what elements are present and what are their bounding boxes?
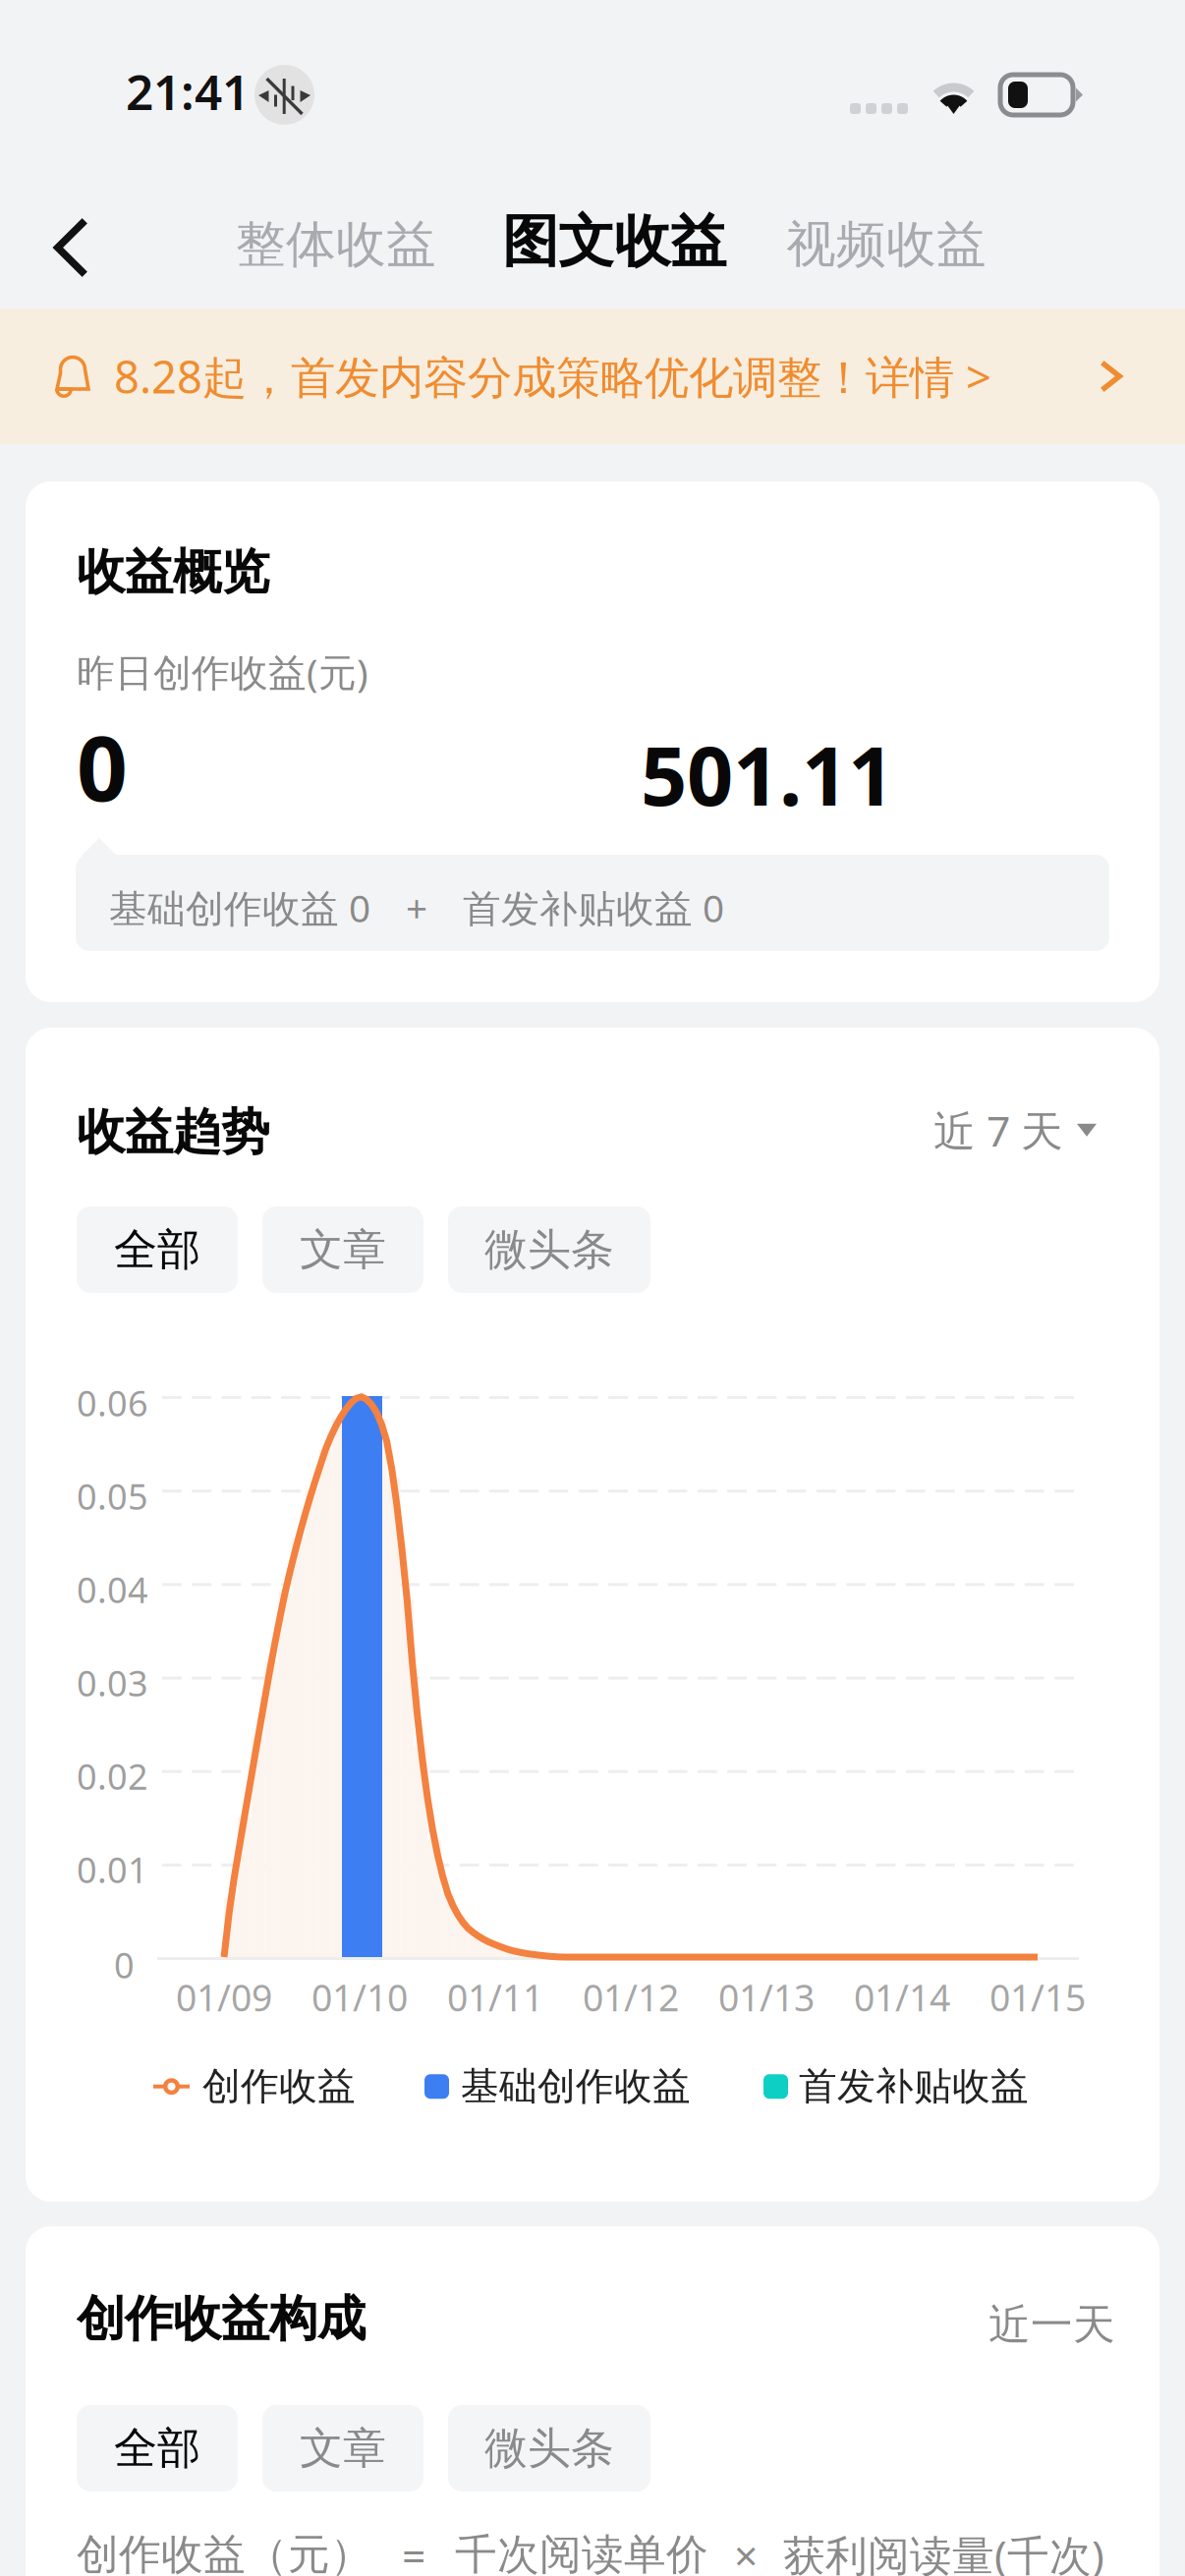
staticText: 收益趋势 <box>77 1102 269 1162</box>
button[interactable]: 微头条 <box>448 1206 650 1293</box>
button[interactable]: 微头条 <box>448 2405 650 2492</box>
staticText: 获利阅读量(千次) <box>783 2527 1104 2576</box>
staticText: 基础创作收益 <box>461 2063 691 2110</box>
staticText: 收益概览 <box>77 542 269 602</box>
staticText: 微头条 <box>484 2422 614 2475</box>
button[interactable]: 8.28起，首发内容分成策略优化调整！详情 > <box>0 308 1185 444</box>
staticText: 0.03 <box>77 1659 148 1706</box>
staticText: 0.04 <box>77 1566 148 1613</box>
staticText: 近一天 <box>988 2299 1115 2350</box>
staticText: 0.06 <box>77 1379 148 1426</box>
staticText: 千次阅读单价 <box>455 2529 708 2576</box>
staticText: 01/15 <box>989 1973 1086 2022</box>
button[interactable]: 文章 <box>262 2405 423 2492</box>
staticText: 昨日创作收益(元) <box>77 646 368 697</box>
staticText: 创作收益构成 <box>77 2289 366 2349</box>
staticText: 文章 <box>300 1223 386 1276</box>
staticText: + <box>406 882 427 933</box>
button[interactable]: 整体收益 <box>236 212 436 277</box>
staticText: 8.28起，首发内容分成策略优化调整！详情 > <box>114 347 991 406</box>
staticText: 首发补贴收益 <box>799 2063 1029 2110</box>
button[interactable]: 文章 <box>262 1206 423 1293</box>
staticText: 0.01 <box>77 1846 148 1893</box>
staticText: 01/09 <box>176 1973 272 2022</box>
staticText: 图文收益 <box>502 207 726 276</box>
staticText: 01/13 <box>718 1973 815 2022</box>
staticText: 0 <box>77 707 128 826</box>
staticText: 微头条 <box>484 1223 614 1276</box>
staticText: 0.05 <box>77 1473 148 1520</box>
staticText: 0.02 <box>77 1753 148 1800</box>
button[interactable]: 全部 <box>77 1206 238 1293</box>
button[interactable]: 近 7 天 <box>933 1102 1097 1158</box>
staticText: 01/11 <box>447 1973 543 2022</box>
staticText: 全部 <box>114 2422 200 2475</box>
staticText: 0 <box>114 1941 135 1988</box>
button[interactable]: 返回 <box>29 193 124 303</box>
staticText: × <box>734 2527 758 2576</box>
staticText: 01/14 <box>854 1973 950 2022</box>
staticText: 01/12 <box>583 1973 679 2022</box>
staticText: 创作收益（元） <box>77 2529 372 2576</box>
staticText: 文章 <box>300 2422 386 2475</box>
staticText: 视频收益 <box>786 214 987 275</box>
staticText: 整体收益 <box>236 214 436 275</box>
staticText: 全部 <box>114 1223 200 1276</box>
staticText: 501.11 <box>641 720 894 828</box>
staticText: 首发补贴收益 0 <box>463 882 724 933</box>
staticText: 近 7 天 <box>933 1102 1063 1158</box>
staticText: = <box>402 2527 425 2576</box>
staticText: 01/10 <box>311 1973 408 2022</box>
staticText: 创作收益 <box>202 2063 356 2110</box>
button[interactable]: 图文收益 <box>502 203 726 280</box>
staticText: 21:41 <box>126 59 250 123</box>
button[interactable]: 全部 <box>77 2405 238 2492</box>
staticText: 基础创作收益 0 <box>109 882 370 933</box>
button[interactable]: 视频收益 <box>786 212 987 277</box>
